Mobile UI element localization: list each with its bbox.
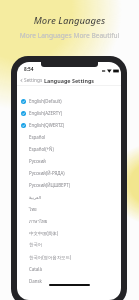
- staticText: More Languages More Beautiful: [0, 31, 139, 40]
- staticText: Русский: [29, 158, 46, 164]
- button[interactable]: Español: [17, 131, 121, 143]
- staticText: English(QWERTZ): [29, 122, 65, 128]
- button[interactable]: 한국어: [17, 239, 121, 251]
- button[interactable]: English(Default): [17, 95, 121, 107]
- button[interactable]: English(QWERTZ): [17, 119, 121, 131]
- button[interactable]: Русский(Й-РЯДА): [17, 167, 121, 179]
- button[interactable]: 한국어(영어음차모드): [17, 251, 121, 263]
- staticText: 한국어: [29, 242, 43, 248]
- button[interactable]: ภาษาไทย: [17, 215, 121, 227]
- button[interactable]: Español(+Ñ): [17, 143, 121, 155]
- staticText: 中文中国(简体): [29, 230, 58, 236]
- staticText: Español: [29, 134, 46, 140]
- staticText: Language Settings: [44, 77, 95, 84]
- button[interactable]: 中文中国(简体): [17, 227, 121, 239]
- button[interactable]: ไทย: [17, 203, 121, 215]
- button[interactable]: Русский(ЙЦШВЕРТ): [17, 179, 121, 191]
- staticText: العربية: [29, 195, 41, 200]
- staticText: English(AZERTY): [29, 110, 62, 116]
- staticText: Dansk: [29, 278, 42, 284]
- staticText: ไทย: [29, 206, 37, 213]
- staticText: Español(+Ñ): [29, 146, 54, 152]
- button[interactable]: Dansk: [17, 275, 121, 287]
- staticText: English(Default): [29, 98, 62, 104]
- button[interactable]: English(AZERTY): [17, 107, 121, 119]
- button[interactable]: Català: [17, 263, 121, 275]
- button[interactable]: Русский: [17, 155, 121, 167]
- staticText: Català: [29, 266, 42, 272]
- staticText: Русский(ЙЦШВЕРТ): [29, 182, 70, 188]
- staticText: Русский(Й-РЯДА): [29, 170, 65, 176]
- staticText: More Languages: [0, 14, 139, 27]
- staticText: ภาษาไทย: [29, 218, 48, 225]
- button[interactable]: Settings: [19, 77, 43, 84]
- staticText: 8:54: [24, 66, 34, 73]
- staticText: 한국어(영어음차모드): [29, 254, 72, 260]
- button[interactable]: العربية: [17, 191, 121, 203]
- staticText: Settings: [24, 77, 43, 84]
